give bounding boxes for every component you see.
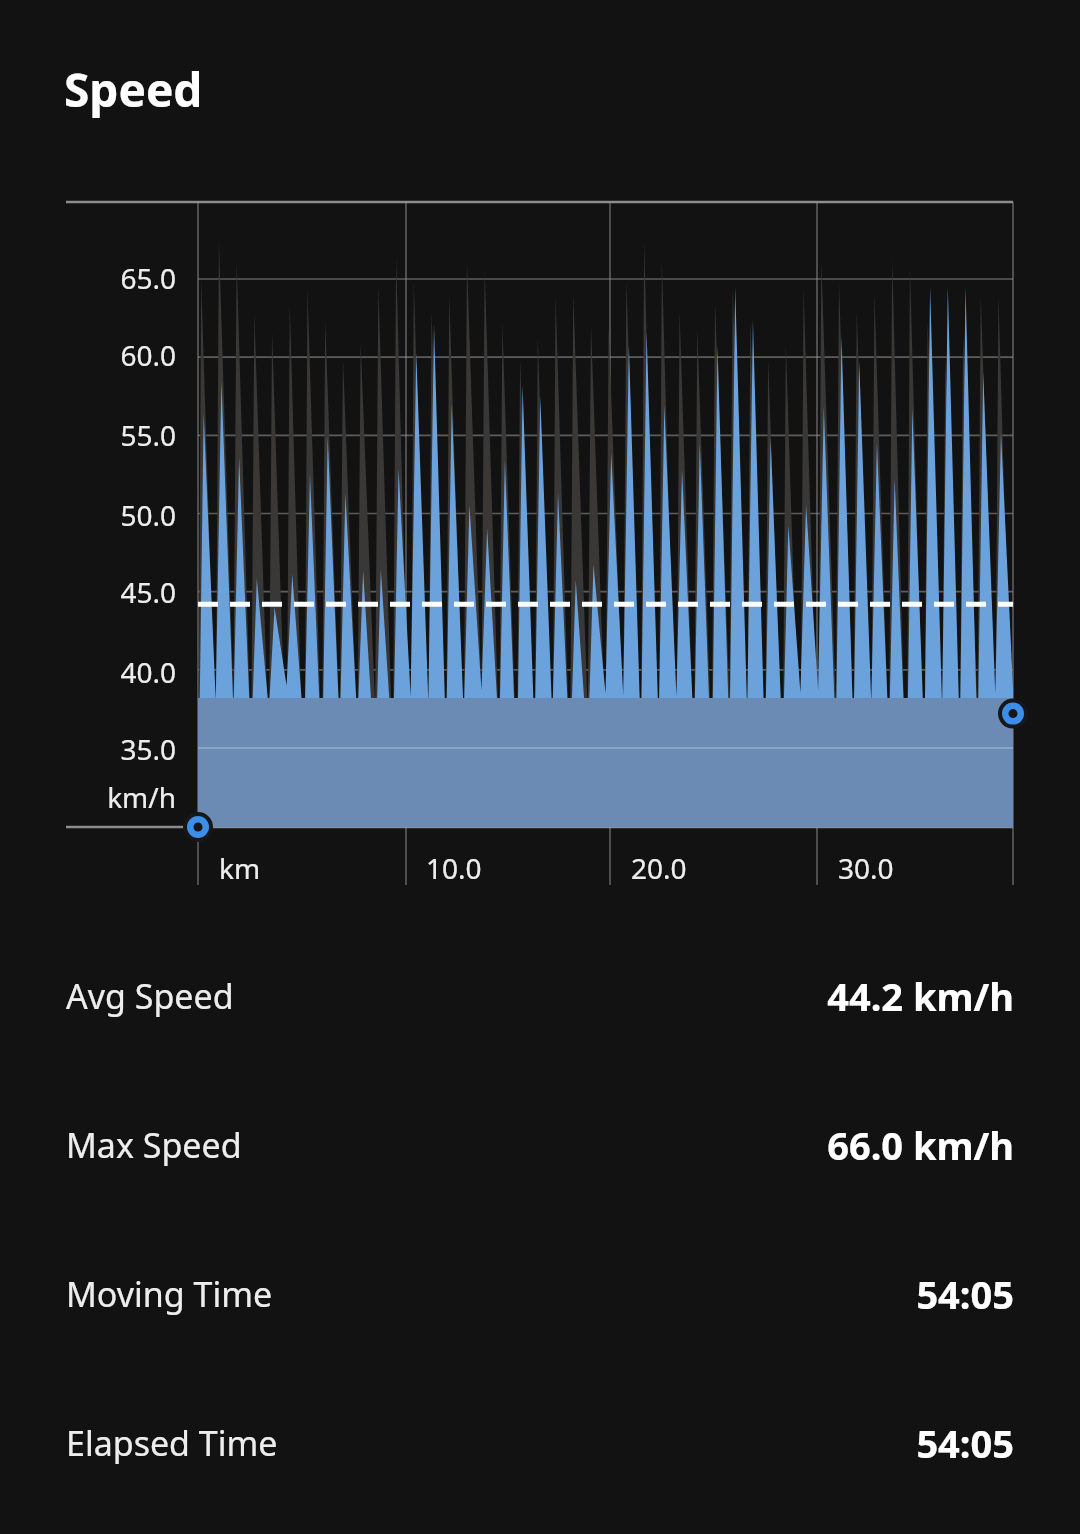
staticText: Speed [64, 58, 203, 121]
staticText: Moving Time [66, 1271, 273, 1317]
staticText: 65.0 [0, 259, 176, 297]
button[interactable]: Elapsed Time [0, 1368, 1080, 1517]
staticText: 66.0 km/h [827, 1119, 1014, 1171]
staticText: km [219, 849, 261, 887]
staticText: 45.0 [0, 573, 176, 611]
staticText: 44.2 km/h [827, 970, 1014, 1022]
staticText: 40.0 [0, 653, 176, 691]
button[interactable]: Max Speed [0, 1070, 1080, 1219]
staticText: 50.0 [0, 496, 176, 534]
staticText: 60.0 [0, 336, 176, 374]
staticText: Max Speed [66, 1122, 242, 1168]
other: Speed over distance chart [0, 0, 1080, 1534]
staticText: km/h [0, 778, 176, 816]
staticText: 54:05 [916, 1417, 1014, 1469]
staticText: 35.0 [0, 730, 176, 768]
staticText: Elapsed Time [66, 1420, 278, 1466]
staticText: 10.0 [426, 849, 482, 887]
staticText: 54:05 [916, 1268, 1014, 1320]
button[interactable]: Moving Time [0, 1219, 1080, 1368]
staticText: Avg Speed [66, 973, 234, 1019]
staticText: 30.0 [838, 849, 894, 887]
staticText: 20.0 [631, 849, 687, 887]
button[interactable]: Avg Speed [0, 921, 1080, 1070]
staticText: 55.0 [0, 416, 176, 454]
